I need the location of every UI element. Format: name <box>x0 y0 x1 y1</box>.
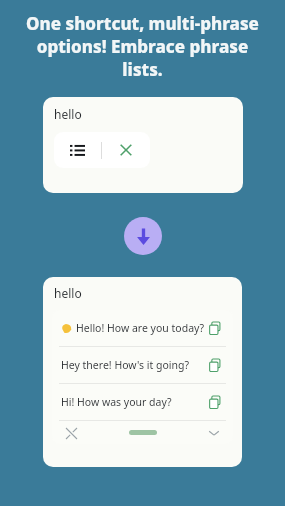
button[interactable]: Copy <box>205 318 225 338</box>
button[interactable]: Shuffle <box>61 423 81 443</box>
button[interactable]: hello <box>43 97 243 193</box>
staticText: hello <box>54 285 82 301</box>
button[interactable]: Hello! How are you today? <box>52 310 233 346</box>
button[interactable]: Phrase list <box>54 132 101 168</box>
button[interactable]: Expand <box>124 217 162 255</box>
button[interactable]: hello <box>43 277 242 467</box>
staticText: Hi! How was your day? <box>61 395 205 409</box>
button[interactable]: Hi! How was your day? <box>52 384 233 420</box>
button[interactable]: Hey there! How's it going? <box>52 347 233 383</box>
staticText: hello <box>54 106 82 122</box>
button[interactable]: Close <box>102 132 150 168</box>
button[interactable]: Copy <box>205 392 225 412</box>
staticText: Hello! How are you today? <box>76 321 205 335</box>
button[interactable]: Collapse <box>204 423 224 443</box>
staticText: One shortcut, multi-phrase options! Embr… <box>18 12 267 81</box>
button[interactable]: Copy <box>205 355 225 375</box>
staticText: Hey there! How's it going? <box>61 358 205 372</box>
